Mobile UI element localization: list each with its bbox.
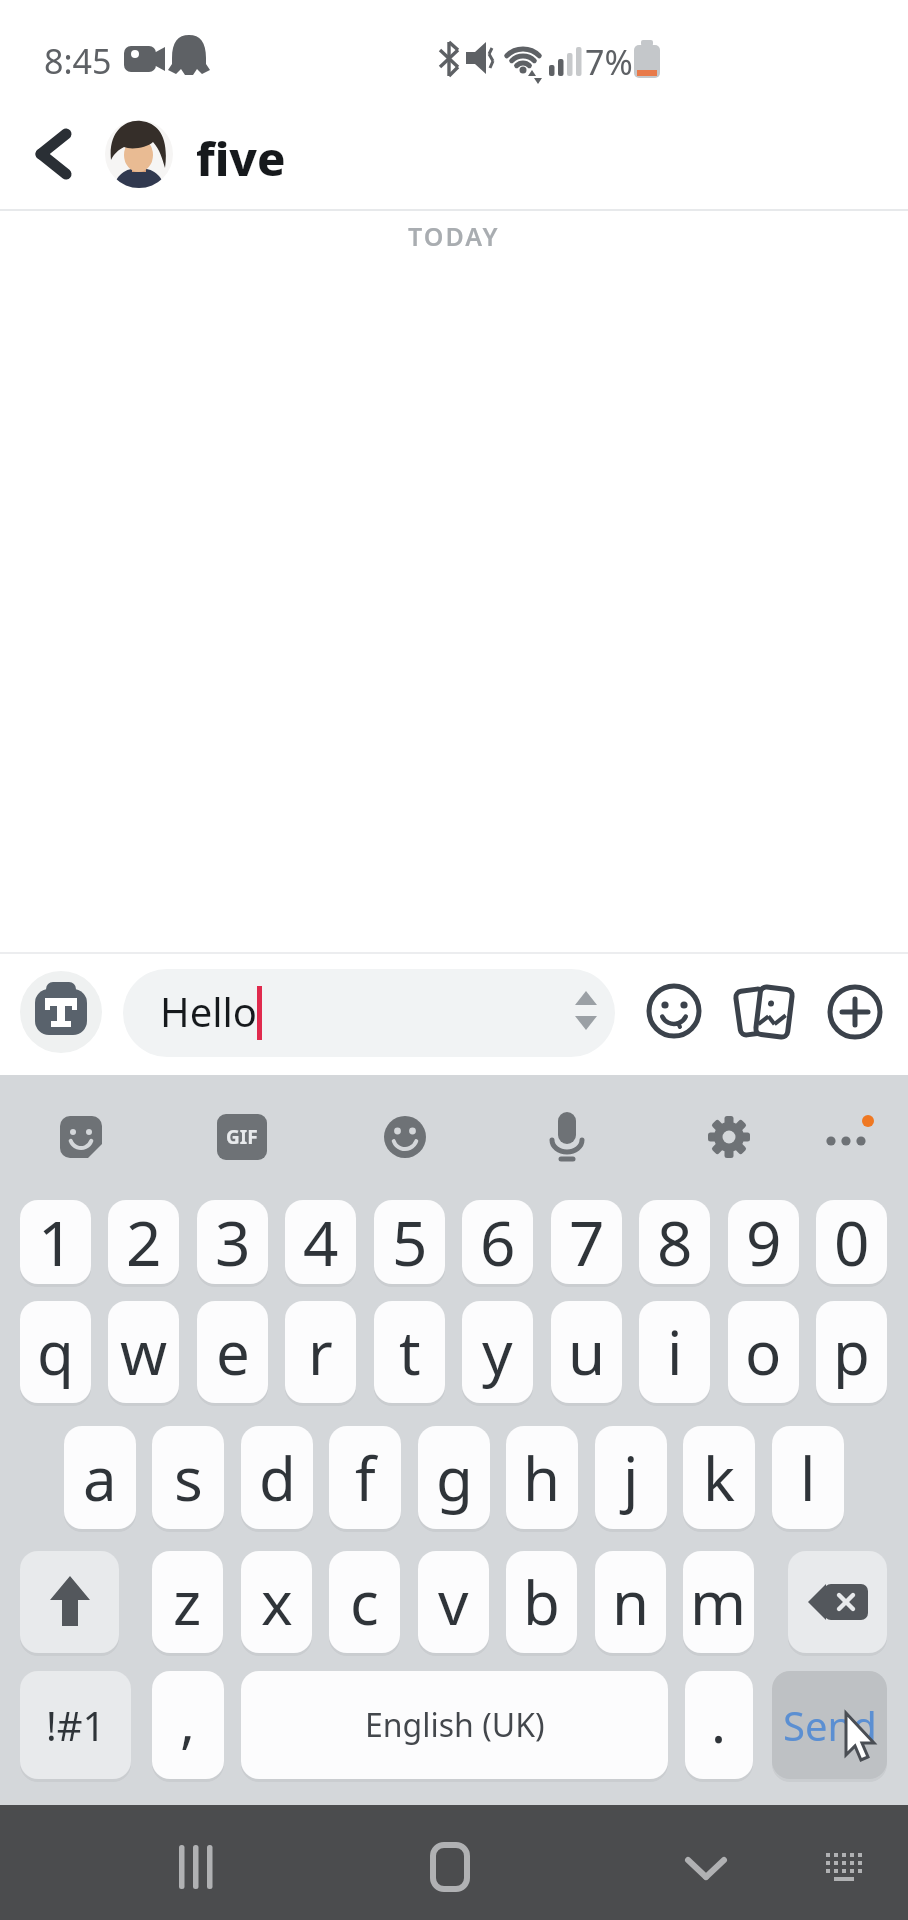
staticText: e (216, 1311, 250, 1393)
staticText: o (745, 1311, 782, 1393)
button[interactable] (105, 120, 173, 188)
button[interactable]: z (152, 1551, 223, 1653)
button[interactable]: g (418, 1426, 490, 1529)
staticText: f (355, 1437, 376, 1519)
staticText: z (173, 1561, 202, 1643)
button[interactable]: 2 (108, 1200, 179, 1284)
button[interactable] (20, 971, 102, 1053)
staticText: j (623, 1437, 639, 1519)
button[interactable]: q (20, 1301, 91, 1403)
button[interactable]: 3 (197, 1200, 268, 1284)
button[interactable]: English (UK) (241, 1671, 668, 1779)
button[interactable] (732, 980, 796, 1044)
staticText: q (37, 1311, 74, 1393)
staticText: g (436, 1437, 473, 1519)
staticText: a (83, 1437, 117, 1519)
button[interactable]: o (728, 1301, 799, 1403)
button[interactable]: c (329, 1551, 400, 1653)
staticText: k (703, 1437, 736, 1519)
staticText: !#1 (46, 1698, 106, 1752)
staticText: 5 (392, 1200, 428, 1284)
button[interactable]: 7 (551, 1200, 622, 1284)
button[interactable]: 4 (285, 1200, 356, 1284)
button[interactable]: y (462, 1301, 533, 1403)
button[interactable]: p (816, 1301, 887, 1403)
button[interactable] (165, 1835, 229, 1899)
button[interactable] (382, 1114, 428, 1160)
button[interactable]: 5 (374, 1200, 445, 1284)
button[interactable]: !#1 (20, 1671, 131, 1779)
staticText: r (308, 1311, 333, 1393)
staticText: English (UK) (365, 1703, 545, 1747)
button[interactable]: b (506, 1551, 577, 1653)
staticText: 9 (746, 1200, 782, 1284)
button[interactable]: 0 (816, 1200, 887, 1284)
button[interactable] (812, 1835, 876, 1899)
button[interactable]: 6 (462, 1200, 533, 1284)
button[interactable]: s (152, 1426, 224, 1529)
button[interactable] (544, 1108, 590, 1166)
staticText: 8 (657, 1200, 693, 1284)
staticText: five (196, 126, 286, 182)
button[interactable] (788, 1551, 887, 1653)
staticText: n (612, 1561, 650, 1643)
staticText: 2 (126, 1200, 162, 1284)
button[interactable]: x (241, 1551, 312, 1653)
staticText: , (180, 1683, 196, 1759)
button[interactable]: m (683, 1551, 754, 1653)
button[interactable]: . (685, 1671, 753, 1779)
button[interactable]: 1 (20, 1200, 91, 1284)
button[interactable]: r (285, 1301, 356, 1403)
button[interactable]: n (595, 1551, 666, 1653)
staticText: Hello (160, 984, 258, 1038)
staticText: TODAY (408, 219, 500, 253)
staticText: 7% (585, 39, 633, 85)
button[interactable]: w (108, 1301, 179, 1403)
button[interactable] (825, 982, 885, 1042)
button[interactable]: GIF (217, 1114, 267, 1160)
staticText: m (690, 1561, 747, 1643)
button[interactable]: Hello (123, 969, 615, 1057)
button[interactable] (706, 1114, 752, 1160)
button[interactable]: t (374, 1301, 445, 1403)
button[interactable]: f (329, 1426, 401, 1529)
button[interactable] (820, 1114, 876, 1160)
staticText: x (261, 1561, 293, 1643)
button[interactable]: i (639, 1301, 710, 1403)
staticText: b (523, 1561, 560, 1643)
staticText: u (568, 1311, 606, 1393)
staticText: 8:45 (44, 38, 112, 84)
button[interactable] (644, 981, 704, 1041)
button[interactable] (26, 126, 82, 182)
staticText: s (174, 1437, 203, 1519)
staticText: 7 (569, 1200, 605, 1284)
button[interactable] (20, 1551, 119, 1653)
staticText: GIF (226, 1124, 258, 1150)
button[interactable]: 9 (728, 1200, 799, 1284)
button[interactable]: d (241, 1426, 313, 1529)
button[interactable] (674, 1835, 738, 1899)
button[interactable]: h (506, 1426, 578, 1529)
staticText: 3 (215, 1200, 251, 1284)
button[interactable] (56, 1112, 106, 1162)
staticText: 0 (834, 1200, 870, 1284)
button[interactable]: k (683, 1426, 755, 1529)
button[interactable]: u (551, 1301, 622, 1403)
staticText: Send (783, 1698, 877, 1752)
button[interactable]: 8 (639, 1200, 710, 1284)
button[interactable]: e (197, 1301, 268, 1403)
button[interactable]: v (418, 1551, 489, 1653)
staticText: t (399, 1311, 421, 1393)
button[interactable]: a (64, 1426, 136, 1529)
button[interactable] (418, 1835, 482, 1899)
button[interactable]: j (595, 1426, 667, 1529)
staticText: c (350, 1561, 379, 1643)
staticText: y (482, 1311, 513, 1393)
button[interactable]: l (772, 1426, 844, 1529)
staticText: d (259, 1437, 296, 1519)
staticText: . (711, 1683, 727, 1759)
staticText: 6 (480, 1200, 516, 1284)
button[interactable]: Send (772, 1671, 887, 1779)
staticText: p (833, 1311, 870, 1393)
button[interactable]: , (152, 1671, 224, 1779)
